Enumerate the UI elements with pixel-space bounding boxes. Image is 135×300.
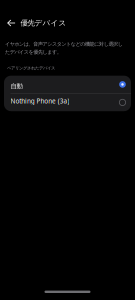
button[interactable]: 自動 bbox=[4, 76, 131, 93]
staticText: Nothing Phone (3a) bbox=[10, 97, 69, 105]
button[interactable]: Back bbox=[1, 16, 20, 30]
staticText: ペアリングされたデバイス bbox=[7, 65, 55, 71]
staticText: 優先デバイス bbox=[20, 18, 66, 28]
staticText: 自動 bbox=[10, 82, 22, 90]
staticText: イヤホンは、音声アシスタントなどの機能に対し選択したデバイスを優先します。 bbox=[5, 41, 123, 55]
button[interactable]: Nothing Phone (3a) bbox=[4, 94, 131, 111]
